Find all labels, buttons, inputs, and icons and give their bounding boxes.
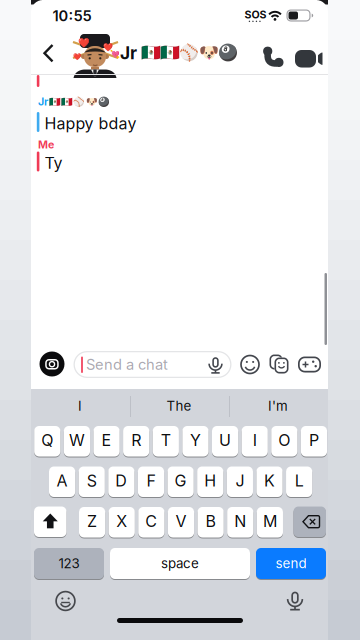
staticText: I'm — [268, 398, 288, 414]
staticText: ❤️ — [78, 37, 90, 48]
button[interactable]: C — [138, 506, 164, 538]
button[interactable]: send — [256, 547, 326, 579]
staticText: space — [161, 556, 199, 571]
button[interactable]: Video call — [295, 49, 325, 69]
button[interactable]: Send a chat — [73, 351, 231, 378]
button[interactable]: N — [227, 506, 253, 538]
staticText: K — [264, 471, 275, 490]
staticText: send — [275, 556, 306, 571]
staticText: P — [309, 431, 319, 450]
button[interactable]: A — [49, 466, 75, 497]
button[interactable]: Emoji — [240, 355, 259, 374]
staticText: W — [69, 431, 85, 450]
staticText: Me — [38, 138, 54, 151]
staticText: 🇲🇽 — [160, 44, 180, 62]
button[interactable]: Conversation info — [120, 42, 144, 64]
staticText: 🎱 — [218, 44, 238, 62]
button[interactable]: Shift — [34, 506, 66, 538]
staticText: H — [204, 471, 216, 490]
staticText: 🇲🇽 — [61, 96, 73, 107]
staticText: Ty — [44, 154, 62, 172]
staticText: R — [131, 431, 141, 450]
button[interactable]: Voice call — [262, 46, 288, 68]
staticText: B — [206, 512, 216, 531]
button[interactable]: Emoji keyboard — [56, 591, 76, 611]
staticText: 10:55 — [52, 7, 91, 25]
button[interactable]: 123 — [34, 547, 104, 579]
staticText: Jr — [38, 95, 48, 108]
button[interactable]: The — [130, 392, 228, 420]
staticText: S — [87, 471, 97, 490]
button[interactable]: K — [256, 466, 283, 497]
staticText: 🇲🇽 — [48, 96, 60, 107]
button[interactable]: Dictation — [285, 590, 305, 611]
button[interactable]: D — [108, 466, 134, 497]
button[interactable]: G — [167, 466, 194, 497]
button[interactable]: P — [301, 425, 327, 457]
button[interactable]: Q — [34, 425, 60, 457]
button[interactable]: O — [271, 425, 297, 457]
staticText: SOS — [244, 8, 266, 21]
staticText: 🐶 — [86, 96, 98, 107]
button[interactable]: I — [31, 392, 129, 420]
button[interactable]: B — [197, 506, 224, 538]
button[interactable]: X — [109, 506, 135, 538]
staticText: Happy bday — [44, 114, 136, 133]
button[interactable]: H — [197, 466, 223, 497]
staticText: 🐶 — [199, 44, 219, 62]
button[interactable]: R — [123, 425, 149, 457]
button[interactable]: Stickers — [269, 354, 289, 373]
staticText: 🇲🇽 — [141, 44, 161, 62]
button[interactable]: Back — [40, 43, 57, 64]
button[interactable]: I — [242, 425, 268, 457]
button[interactable]: F — [138, 466, 164, 497]
button[interactable]: T — [153, 425, 179, 457]
staticText: F — [146, 471, 155, 490]
staticText: A — [57, 471, 68, 490]
staticText: I — [253, 431, 257, 450]
button[interactable]: J — [227, 466, 253, 497]
staticText: Q — [41, 431, 53, 450]
staticText: ⚾ — [179, 44, 199, 62]
button[interactable]: Games — [298, 356, 321, 372]
staticText: The — [166, 398, 191, 414]
staticText: D — [115, 471, 127, 490]
staticText: 💘 — [109, 49, 119, 58]
staticText: J — [235, 471, 244, 490]
staticText: V — [175, 512, 186, 531]
button[interactable]: Delete — [293, 506, 326, 538]
button[interactable]: W — [64, 425, 90, 457]
button[interactable]: I'm — [229, 392, 327, 420]
button[interactable]: S — [79, 466, 105, 497]
button[interactable]: L — [286, 466, 312, 497]
staticText: Jr — [120, 43, 137, 63]
button[interactable]: Z — [79, 506, 105, 538]
staticText: ❤️ — [102, 42, 112, 51]
staticText: X — [116, 512, 127, 531]
staticText: I — [78, 398, 82, 414]
staticText: 123 — [58, 556, 79, 571]
button[interactable]: V — [168, 506, 194, 538]
staticText: T — [161, 431, 171, 450]
staticText: Y — [190, 431, 201, 450]
staticText: Send a chat — [86, 356, 168, 373]
button[interactable]: space — [110, 547, 250, 579]
staticText: O — [278, 431, 290, 450]
staticText: C — [145, 512, 157, 531]
staticText: E — [102, 431, 112, 450]
staticText: U — [219, 431, 231, 450]
staticText: L — [295, 471, 304, 490]
staticText: N — [234, 512, 246, 531]
staticText: M — [263, 512, 277, 531]
staticText: Z — [87, 512, 97, 531]
button[interactable]: Y — [182, 425, 209, 457]
button[interactable]: U — [212, 425, 238, 457]
staticText: 🎱 — [98, 96, 110, 107]
staticText: G — [175, 471, 187, 490]
button[interactable]: E — [93, 425, 120, 457]
staticText: ⚾ — [73, 96, 85, 107]
staticText: ❤️ — [72, 53, 80, 60]
button[interactable]: Camera — [39, 351, 64, 376]
button[interactable]: M — [257, 506, 283, 538]
